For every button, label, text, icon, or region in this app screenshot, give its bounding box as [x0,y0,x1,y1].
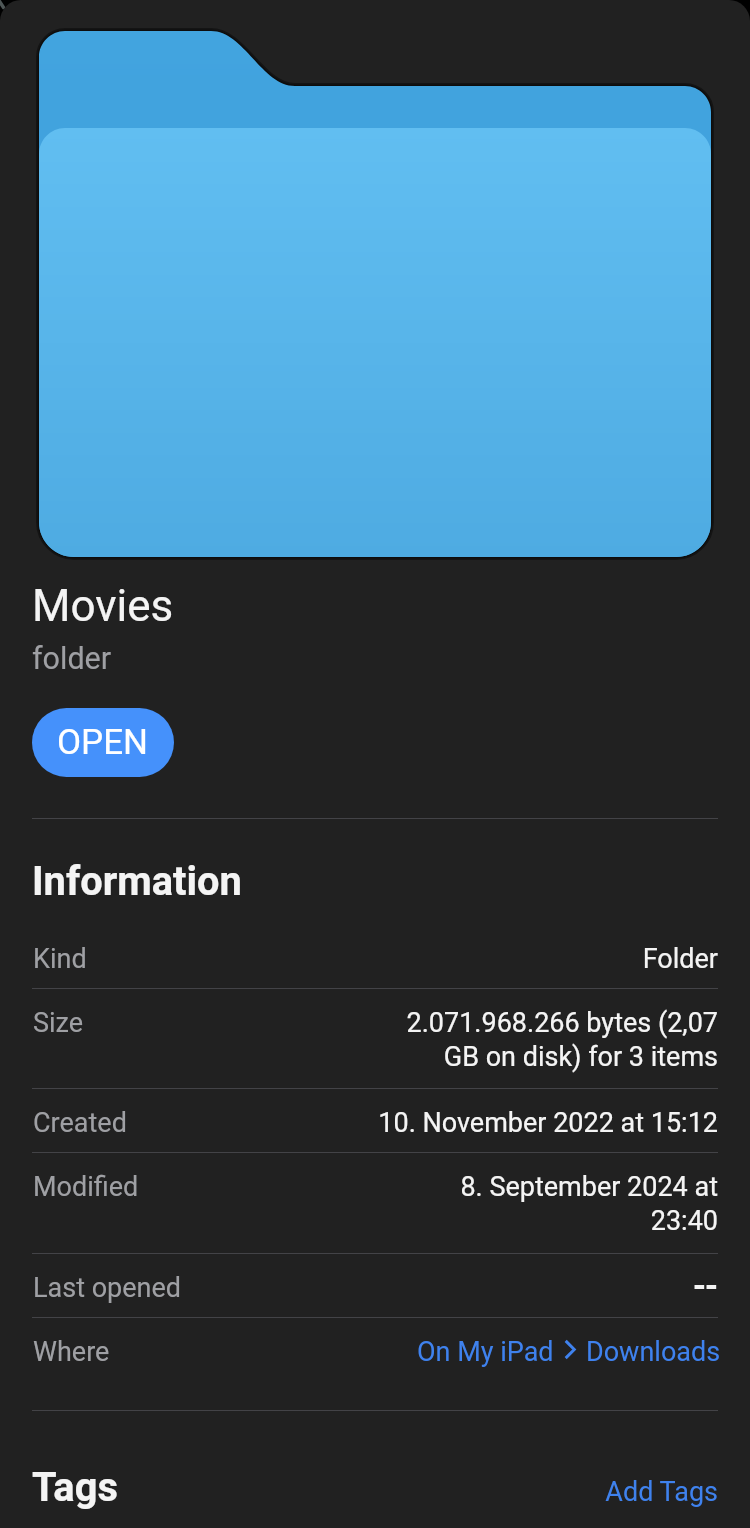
staticText: OPEN [57,722,149,763]
staticText: 10. November 2022 at 15:12 [366,1107,718,1139]
staticText: Created [33,1107,127,1139]
button[interactable]: OPEN [32,708,174,777]
staticText: Add Tags [586,1476,718,1508]
staticText: Downloads [586,1336,721,1368]
staticText: Where [33,1336,110,1368]
other: Open location [554,1336,586,1368]
staticText: folder [32,641,112,677]
button[interactable]: Add Tags [586,1476,718,1508]
staticText: Last opened [33,1272,182,1304]
button[interactable]: Modified [0,1171,750,1237]
button[interactable]: Size [0,1007,750,1073]
button[interactable]: Where [0,1336,750,1368]
button[interactable]: Last opened [0,1272,750,1306]
staticText: On My iPad [417,1336,554,1368]
staticText: Tags [32,1464,118,1511]
staticText: Folder [366,943,718,975]
staticText: Size [33,1007,84,1039]
button[interactable]: Kind [0,943,750,975]
staticText: 2.071.968.266 bytes (2,07 GB on disk) fo… [366,1007,718,1073]
staticText: Information [32,858,242,905]
staticText: Movies [32,580,174,632]
staticText: 8. September 2024 at 23:40 [366,1171,718,1237]
staticText: Kind [33,943,87,975]
button[interactable]: Created [0,1107,750,1139]
staticText: Modified [33,1171,139,1203]
